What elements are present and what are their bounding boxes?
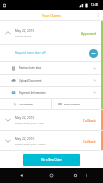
staticText: May 22, 2015	[15, 116, 35, 120]
button[interactable]: Add	[89, 49, 98, 58]
staticText: Dinesh satish Joshi | Family	[15, 142, 46, 145]
button[interactable]: Upload Document	[0, 75, 103, 86]
button[interactable]: Menu	[80, 168, 92, 183]
staticText: Upload Document	[19, 79, 42, 83]
button[interactable]: May 22, 2015	[0, 21, 103, 44]
button[interactable]: File a New Claim	[23, 154, 80, 166]
button[interactable]: Payment Information	[0, 87, 103, 98]
staticText: Request more time off	[15, 51, 46, 55]
staticText: Charles Moore	[15, 34, 32, 37]
staticText: Approved	[81, 31, 96, 35]
staticText: Callback	[83, 139, 96, 143]
staticText: Your Claims	[42, 13, 61, 18]
staticText: 12:30	[91, 3, 99, 7]
staticText: Call Examiner	[19, 103, 34, 106]
button[interactable]: Back	[14, 168, 28, 183]
staticText: Review claim docs	[19, 66, 42, 70]
button[interactable]: Request more time off	[0, 45, 103, 61]
button[interactable]: Recents	[68, 168, 82, 183]
staticText: May 22, 2015	[15, 137, 35, 141]
staticText: Dinesh satish Joshi | Nest	[15, 121, 44, 124]
staticText: Callback	[83, 118, 96, 122]
staticText: Payment Information	[19, 91, 46, 95]
button[interactable]: More options	[93, 10, 103, 20]
button[interactable]: Email Examiner	[52, 99, 103, 109]
button[interactable]: Home	[44, 168, 58, 183]
staticText: Email Examiner	[64, 103, 81, 106]
button[interactable]: Call Examiner	[0, 99, 51, 109]
button[interactable]: Review claim docs	[0, 62, 103, 74]
staticText: May 22, 2015	[15, 29, 35, 33]
button[interactable]: May 22, 2015	[0, 131, 103, 150]
button[interactable]: May 22, 2015	[0, 110, 103, 130]
staticText: File a New Claim	[41, 158, 62, 162]
